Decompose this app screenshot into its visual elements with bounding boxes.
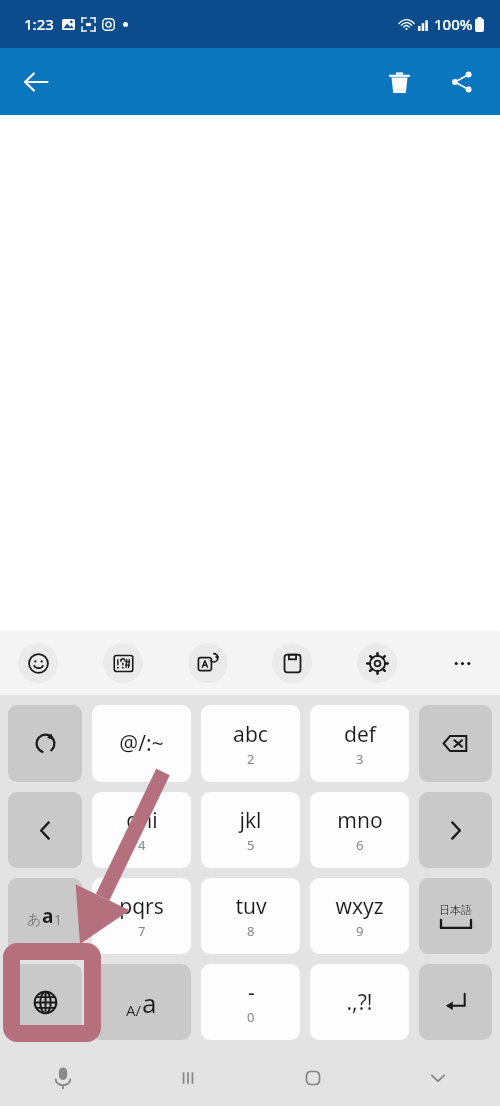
staticText: 8 <box>247 922 255 940</box>
button[interactable]: Toggle case <box>92 964 191 1040</box>
button[interactable]: Move cursor right <box>419 792 492 868</box>
staticText: 7 <box>138 922 146 940</box>
button[interactable]: Move cursor left <box>8 792 82 868</box>
button[interactable]: More options <box>442 643 482 683</box>
button[interactable]: Translate <box>188 643 228 683</box>
button[interactable]: Settings <box>357 643 397 683</box>
staticText: pqrs <box>119 892 164 921</box>
button[interactable]: Back <box>12 58 60 106</box>
button[interactable]: @/:~ <box>92 705 191 782</box>
button[interactable]: .,?! <box>310 964 409 1040</box>
staticText: 日本語 <box>439 903 472 917</box>
button[interactable]: Space <box>419 878 492 954</box>
button[interactable]: Share <box>438 58 486 106</box>
button[interactable]: def <box>310 705 409 782</box>
button[interactable]: wxyz <box>310 878 409 954</box>
button[interactable]: Hide keyboard <box>375 1050 500 1106</box>
staticText: wxyz <box>335 892 384 921</box>
button[interactable]: tuv <box>201 878 300 954</box>
staticText: @/:~ <box>119 729 164 758</box>
staticText: ghi <box>126 806 158 835</box>
staticText: 6 <box>356 836 364 854</box>
staticText: 5 <box>247 836 255 854</box>
button[interactable]: Undo <box>8 705 82 782</box>
staticText: jkl <box>239 806 262 835</box>
button[interactable]: Home <box>250 1050 375 1106</box>
staticText: a <box>42 903 54 929</box>
staticText: mno <box>337 806 383 835</box>
button[interactable]: Switch language <box>8 964 82 1040</box>
button[interactable]: Clipboard <box>272 643 312 683</box>
staticText: 3 <box>356 750 364 768</box>
staticText: .,?! <box>346 988 373 1017</box>
staticText: a <box>142 985 157 1020</box>
staticText: - <box>248 978 255 1007</box>
button[interactable]: Delete <box>375 58 423 106</box>
staticText: A/ <box>126 1000 142 1020</box>
button[interactable]: jkl <box>201 792 300 868</box>
staticText: あ <box>27 911 42 929</box>
staticText: 1 <box>54 910 63 929</box>
button[interactable]: Voice input <box>0 1050 125 1106</box>
button[interactable]: - <box>201 964 300 1040</box>
button[interactable]: Backspace <box>419 705 492 782</box>
button[interactable]: pqrs <box>92 878 191 954</box>
button[interactable]: Symbols <box>103 643 143 683</box>
button[interactable]: Recent apps <box>125 1050 250 1106</box>
button[interactable]: ghi <box>92 792 191 868</box>
staticText: 100% <box>434 14 473 34</box>
staticText: tuv <box>235 892 267 921</box>
button[interactable]: Emoji <box>18 643 58 683</box>
button[interactable]: mno <box>310 792 409 868</box>
staticText: 9 <box>356 922 364 940</box>
button[interactable]: Change input mode <box>8 878 82 954</box>
staticText: abc <box>233 720 268 749</box>
staticText: 1:23 <box>24 14 54 34</box>
staticText: 0 <box>247 1008 255 1026</box>
button[interactable]: abc <box>201 705 300 782</box>
staticText: 4 <box>138 836 146 854</box>
button[interactable]: Enter <box>419 964 492 1040</box>
staticText: 2 <box>247 750 255 768</box>
staticText: def <box>344 720 376 749</box>
